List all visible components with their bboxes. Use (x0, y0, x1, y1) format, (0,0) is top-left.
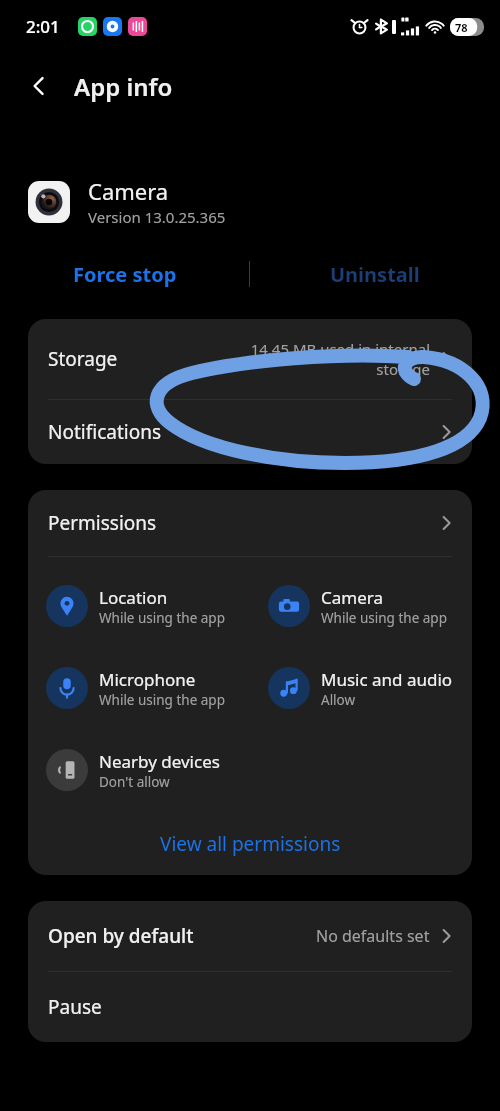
staticText: Don't allow (99, 773, 170, 791)
button[interactable]: View all permissions (28, 813, 472, 875)
button[interactable]: Storage (28, 319, 472, 399)
button[interactable]: Pause (28, 972, 472, 1042)
staticText: Microphone (99, 668, 196, 691)
staticText: While using the app (99, 691, 225, 709)
staticText: Nearby devices (99, 750, 220, 773)
button[interactable]: Microphone (28, 651, 250, 725)
staticText: While using the app (99, 609, 225, 627)
button[interactable]: Permissions (28, 490, 472, 556)
staticText: App info (74, 70, 173, 103)
staticText: While using the app (321, 609, 447, 627)
staticText: Camera (88, 176, 169, 206)
button[interactable]: Nearby devices (28, 733, 250, 807)
staticText: Uninstall (330, 261, 420, 288)
button[interactable]: Camera (250, 569, 472, 643)
staticText: 2:01 (26, 15, 60, 38)
staticText: Notifications (48, 419, 162, 445)
button[interactable]: Force stop (0, 253, 249, 295)
button[interactable]: Back (16, 63, 62, 109)
button[interactable]: Music and audio (250, 651, 472, 725)
button[interactable]: Location (28, 569, 250, 643)
staticText: Force stop (73, 261, 177, 288)
staticText: Permissions (48, 510, 157, 536)
staticText: Storage (48, 346, 118, 372)
staticText: 14.45 MB used in internal storage (224, 339, 430, 379)
staticText: Pause (48, 994, 102, 1020)
staticText: 78 (455, 20, 468, 35)
button[interactable]: Open by default (28, 901, 472, 971)
staticText: Camera (321, 586, 383, 609)
staticText: No defaults set (316, 925, 430, 947)
staticText: View all permissions (160, 831, 341, 857)
staticText: Allow (321, 691, 356, 709)
staticText: Location (99, 586, 168, 609)
button[interactable]: Notifications (28, 400, 472, 464)
button[interactable]: Uninstall (250, 253, 500, 295)
staticText: Version 13.0.25.365 (88, 207, 226, 227)
staticText: Music and audio (321, 668, 453, 691)
staticText: Open by default (48, 923, 194, 949)
